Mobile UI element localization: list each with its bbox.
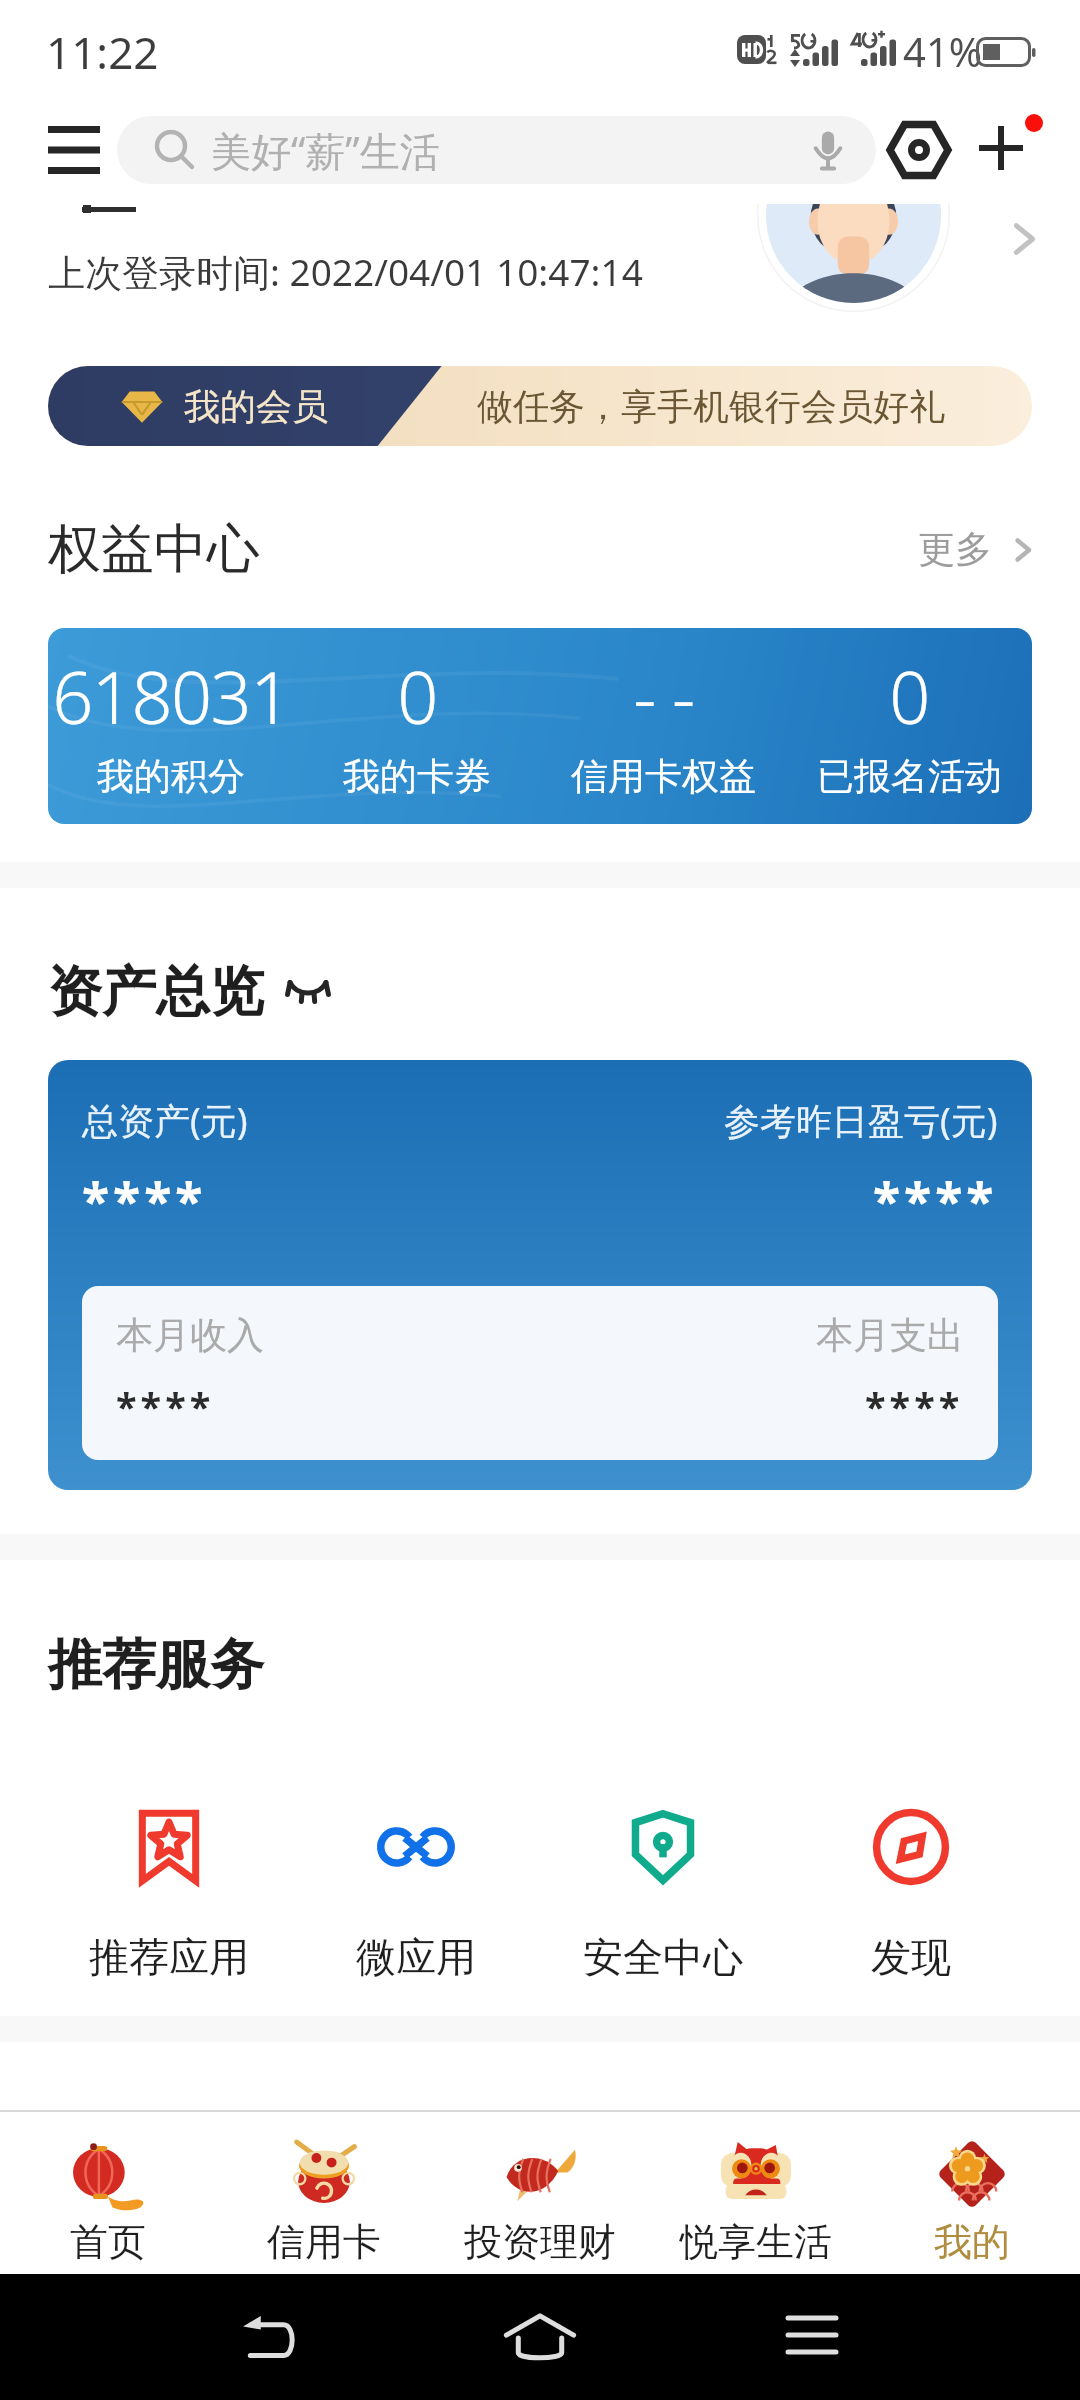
button[interactable]: 0 bbox=[786, 628, 1032, 824]
staticText: 我的 bbox=[934, 2218, 1010, 2266]
button[interactable]: 我的 bbox=[864, 2112, 1080, 2274]
button[interactable]: 悦享生活 bbox=[648, 2112, 864, 2274]
staticText: 参考昨日盈亏(元) bbox=[724, 1096, 998, 1145]
staticText: 发现 bbox=[871, 1932, 951, 1982]
staticText: 首页 bbox=[70, 2218, 146, 2266]
staticText: 11:22 bbox=[46, 22, 159, 82]
staticText: **** bbox=[116, 1380, 215, 1432]
staticText: 信用卡 bbox=[267, 2218, 381, 2266]
button[interactable]: 618031 bbox=[48, 628, 1032, 824]
staticText: 资产总览 bbox=[48, 958, 264, 1026]
staticText: 0 bbox=[397, 647, 437, 745]
button[interactable]: Menu bbox=[40, 100, 108, 200]
staticText: 本月收入 bbox=[116, 1312, 264, 1359]
button[interactable]: 首页 bbox=[0, 2112, 216, 2274]
button[interactable]: Scan bbox=[876, 100, 962, 200]
button[interactable]: 安全中心 bbox=[539, 1810, 787, 1982]
button[interactable]: 我的会员 bbox=[48, 366, 1032, 446]
button[interactable]: 618031 bbox=[48, 628, 294, 824]
staticText: 我的会员 bbox=[184, 384, 328, 429]
staticText: **** bbox=[873, 1166, 998, 1234]
staticText: 信用卡权益 bbox=[571, 753, 756, 800]
button[interactable]: Back bbox=[132, 2274, 404, 2400]
staticText: 我的卡券 bbox=[343, 753, 491, 800]
button[interactable]: 投资理财 bbox=[432, 2112, 648, 2274]
staticText: 权益中心 bbox=[48, 516, 260, 583]
staticText: 推荐服务 bbox=[48, 1631, 264, 1699]
staticText: 做任务，享手机银行会员好礼 bbox=[477, 384, 945, 429]
staticText: - - bbox=[633, 647, 694, 745]
button[interactable]: 更多 bbox=[918, 526, 1040, 573]
button[interactable]: Home bbox=[404, 2274, 676, 2400]
staticText: **** bbox=[865, 1380, 964, 1432]
staticText: 美好“薪”生活 bbox=[211, 123, 440, 178]
button[interactable]: Recents bbox=[676, 2274, 948, 2400]
staticText: 安全中心 bbox=[583, 1932, 743, 1982]
button[interactable]: Profile bbox=[757, 204, 950, 312]
button[interactable]: 美好“薪”生活 bbox=[117, 116, 876, 184]
button[interactable]: - - bbox=[540, 628, 786, 824]
staticText: **** bbox=[82, 1166, 207, 1234]
staticText: 我的积分 bbox=[97, 753, 245, 800]
staticText: 0 bbox=[889, 647, 929, 745]
staticText: 已报名活动 bbox=[817, 753, 1002, 800]
staticText: 更多 bbox=[918, 526, 992, 573]
button[interactable]: 微应用 bbox=[292, 1810, 539, 1982]
staticText: 投资理财 bbox=[464, 2218, 616, 2266]
staticText: 推荐应用 bbox=[89, 1932, 249, 1982]
button[interactable]: Toggle balance visibility bbox=[280, 965, 336, 1019]
button[interactable]: 0 bbox=[294, 628, 540, 824]
staticText: 41% bbox=[903, 24, 982, 78]
button[interactable]: 推荐应用 bbox=[45, 1810, 292, 1982]
button[interactable]: Add bbox=[958, 100, 1054, 200]
staticText: 上次登录时间: 2022/04/01 10:47:14 bbox=[48, 246, 643, 297]
staticText: 总资产(元) bbox=[82, 1096, 248, 1145]
button[interactable]: 信用卡 bbox=[216, 2112, 432, 2274]
button[interactable]: 总资产(元) bbox=[48, 1060, 1032, 1490]
staticText: 悦享生活 bbox=[680, 2218, 832, 2266]
button[interactable]: 发现 bbox=[787, 1810, 1035, 1982]
staticText: 微应用 bbox=[356, 1932, 476, 1982]
staticText: 本月支出 bbox=[816, 1312, 964, 1359]
button[interactable]: Open profile bbox=[1000, 215, 1048, 263]
staticText: 618031 bbox=[52, 647, 290, 745]
